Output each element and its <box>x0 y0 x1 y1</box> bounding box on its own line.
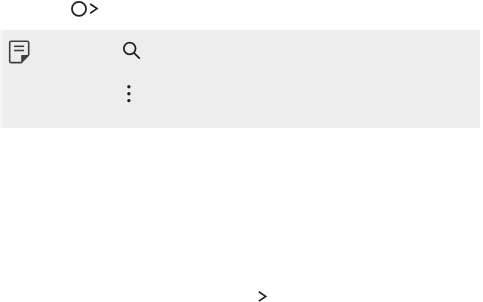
button[interactable]: Search <box>121 40 143 62</box>
button[interactable]: Notes <box>8 39 32 63</box>
button[interactable]: Next <box>254 288 272 302</box>
button[interactable]: Account <box>70 0 100 20</box>
button[interactable]: More options <box>122 82 138 106</box>
